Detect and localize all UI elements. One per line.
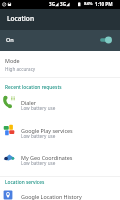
staticText: Recent location requests — [5, 84, 62, 91]
button[interactable]: Mode — [0, 51, 120, 77]
staticText: Low battery use — [21, 160, 56, 166]
staticText: 1:10 PM — [95, 1, 113, 7]
staticText: My Geo Coordinates — [21, 154, 120, 161]
staticText: 84% — [84, 1, 93, 7]
staticText: Dialer — [21, 99, 120, 106]
staticText: Low battery use — [21, 105, 56, 111]
staticText: Google Location History — [21, 193, 120, 200]
other: Location on — [99, 34, 112, 46]
staticText: High accuracy — [5, 66, 36, 72]
staticText: 3G — [49, 1, 55, 7]
staticText: Low battery use — [21, 133, 56, 139]
staticText: Location services — [5, 179, 45, 186]
button[interactable]: Google Play services — [0, 123, 120, 146]
staticText: 3G — [60, 1, 66, 7]
staticText: Location — [7, 14, 35, 23]
staticText: On — [6, 36, 14, 43]
button[interactable]: Dialer — [0, 95, 120, 118]
button[interactable]: Google Location History — [0, 189, 120, 200]
button[interactable]: My Geo Coordinates — [0, 150, 120, 173]
staticText: Mode — [5, 57, 20, 64]
staticText: Low battery use — [21, 199, 56, 200]
button[interactable]: On — [0, 30, 120, 51]
staticText: Google Play services — [21, 127, 120, 134]
